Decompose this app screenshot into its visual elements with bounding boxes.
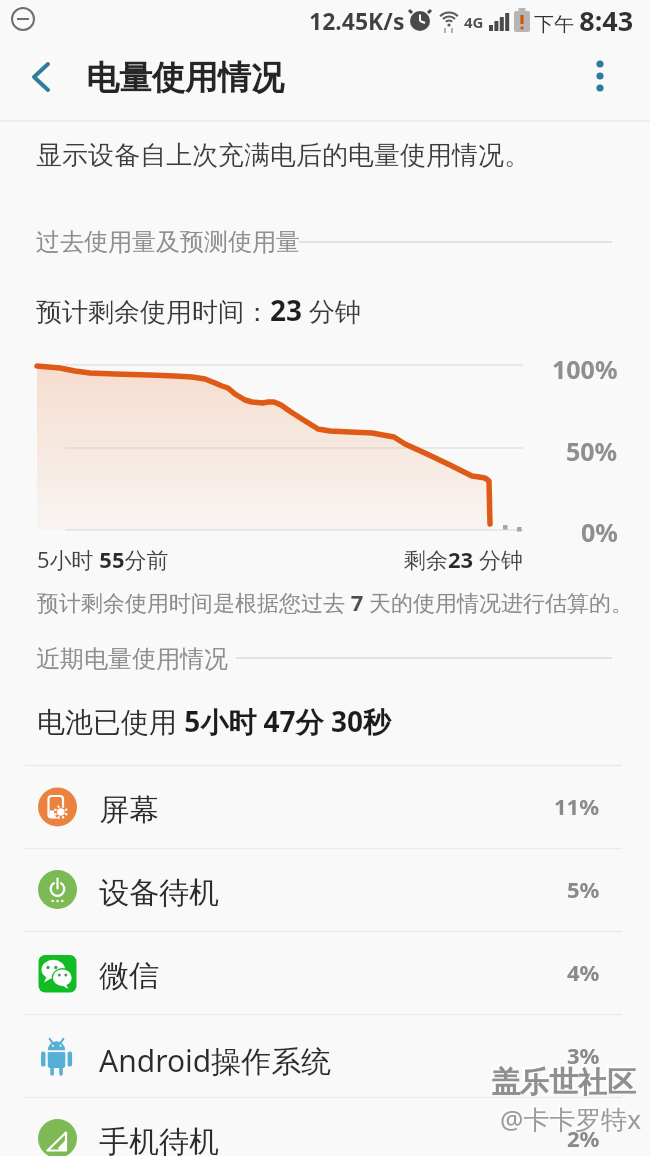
staticText: 近期电量使用情况 [36, 644, 228, 674]
staticText: 4% [567, 957, 600, 987]
staticText: 微信 [99, 957, 159, 995]
staticText: 11% [554, 791, 600, 821]
staticText: 50% [566, 434, 618, 468]
staticText: 剩余23 分钟 [404, 544, 523, 574]
staticText: 盖乐世社区 [491, 1064, 636, 1101]
button[interactable] [0, 1097, 650, 1156]
button[interactable] [0, 931, 650, 1014]
staticText: 5% [567, 874, 600, 904]
staticText: 2% [567, 1123, 600, 1153]
staticText: 电量使用情况 [86, 57, 284, 99]
staticText: 3% [567, 1040, 600, 1070]
button[interactable] [578, 52, 624, 98]
staticText: 100% [552, 352, 618, 386]
staticText: 5小时 55分前 [37, 544, 169, 574]
staticText: 0% [581, 515, 618, 549]
button[interactable] [0, 765, 650, 848]
staticText: 手机待机 [99, 1123, 219, 1156]
button[interactable] [18, 55, 64, 101]
staticText: 设备待机 [99, 874, 219, 912]
staticText: 下午 8:43 [534, 2, 634, 39]
staticText: 显示设备自上次充满电后的电量使用情况。 [36, 139, 530, 172]
button[interactable] [0, 1014, 650, 1097]
staticText: 过去使用量及预测使用量 [36, 227, 300, 257]
staticText: 4G [464, 12, 484, 32]
staticText: @卡卡罗特x [500, 1101, 642, 1137]
staticText: 预计剩余使用时间：23 分钟 [36, 291, 361, 329]
staticText: 预计剩余使用时间是根据您过去 7 天的使用情况进行估算的。 [37, 587, 634, 617]
staticText: Android操作系统 [99, 1040, 332, 1081]
button[interactable] [0, 848, 650, 931]
staticText: 屏幕 [99, 791, 159, 829]
staticText: 12.45K/s [309, 5, 405, 36]
staticText: 电池已使用 5小时 47分 30秒 [37, 702, 391, 740]
